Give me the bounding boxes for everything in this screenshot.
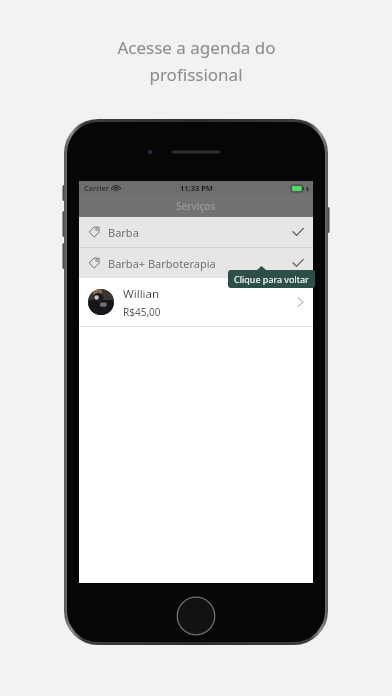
staticText: Clique para voltar [234, 273, 309, 285]
staticText: profissional [149, 63, 243, 86]
staticText: Barba+ Barboterapia [108, 256, 216, 271]
staticText: Barba [108, 225, 139, 240]
staticText: Serviços [176, 199, 216, 213]
button[interactable]: Willian [79, 278, 313, 326]
button[interactable]: Barba+ Barboterapia [79, 248, 313, 278]
staticText: R$45,00 [123, 305, 161, 319]
button[interactable]: Clique para voltar [228, 270, 315, 288]
staticText: Willian [123, 286, 160, 302]
button[interactable]: Barba [79, 217, 313, 247]
staticText: Carrier [84, 183, 109, 193]
staticText: 11:33 PM [180, 183, 213, 193]
staticText: Acesse a agenda do [117, 36, 276, 59]
other: Clique para voltar [228, 266, 315, 284]
